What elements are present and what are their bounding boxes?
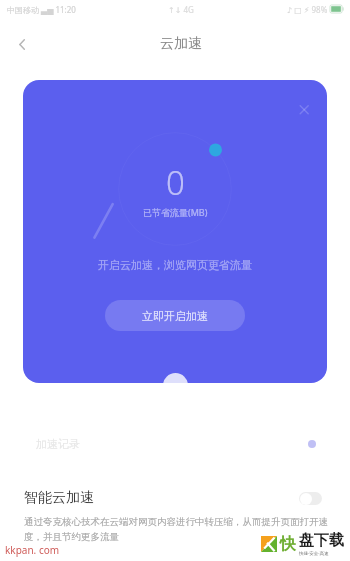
staticText: ♪ □ ⚡ 98% [287, 4, 328, 15]
staticText: 快 [280, 534, 296, 554]
staticText: ↑↓ 4G [168, 4, 194, 15]
button[interactable]: 立即开启加速 [105, 300, 245, 331]
button[interactable]: Back [9, 31, 35, 57]
staticText: 中国移动 ▃▅ 11:20 [7, 4, 76, 15]
staticText: 通过夸克核心技术在云端对网页内容进行中转压缩，从而提升页面打开速度，并且节约更多… [24, 516, 334, 543]
staticText: 智能云加速 [24, 489, 94, 507]
staticText: 开启云加速，浏览网页更省流量 [98, 258, 252, 272]
staticText: 立即开启加速 [142, 309, 208, 323]
staticText: 0 [166, 160, 185, 205]
staticText: 云加速 [160, 35, 202, 53]
staticText: 快捷·安全·高速 [299, 550, 329, 556]
button[interactable]: Toggle smart cloud acceleration [299, 492, 322, 505]
button[interactable]: 加速记录 [0, 430, 350, 458]
staticText: 已节省流量(MB) [143, 206, 208, 218]
staticText: kkpan. com [5, 543, 60, 557]
staticText: 盘下载 [299, 531, 344, 550]
staticText: 加速记录 [36, 437, 80, 451]
